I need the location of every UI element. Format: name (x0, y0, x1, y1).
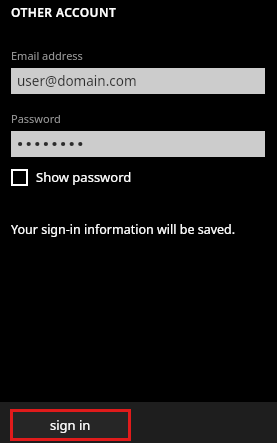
staticText: OTHER ACCOUNT (11, 4, 117, 20)
staticText: sign in (50, 416, 91, 434)
button[interactable]: Password field (11, 131, 265, 157)
button[interactable]: Show password (11, 166, 132, 188)
staticText: user@domain.com (17, 72, 137, 90)
button[interactable]: sign in (10, 409, 131, 441)
staticText: Email address (11, 48, 83, 63)
staticText: Your sign-in information will be saved. (11, 221, 236, 238)
staticText: Password (11, 111, 61, 126)
button[interactable]: Email address field (11, 68, 265, 94)
staticText: Show password (36, 168, 132, 186)
